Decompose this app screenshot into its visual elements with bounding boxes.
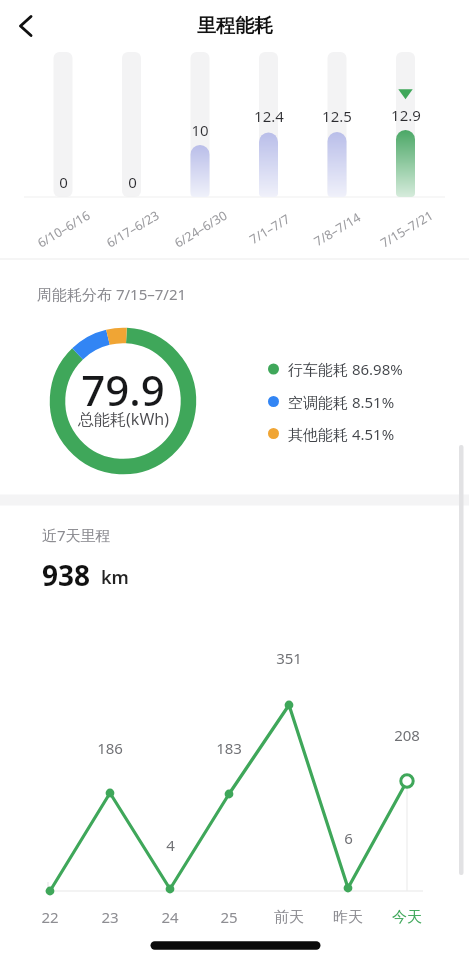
staticText: 186	[97, 738, 123, 758]
staticText: 7/8–7/14	[311, 209, 364, 250]
staticText: 351	[276, 648, 302, 668]
staticText: 今天	[392, 908, 422, 927]
staticText: 0	[128, 172, 137, 192]
staticText: 12.4	[254, 106, 284, 126]
staticText: 空调能耗 8.51%	[288, 392, 395, 412]
button[interactable]	[8, 9, 44, 43]
staticText: 昨天	[333, 908, 363, 927]
staticText: 12.5	[322, 106, 352, 126]
staticText: 0	[59, 172, 68, 192]
button[interactable]: 行车能耗 86.98%	[288, 355, 403, 383]
staticText: 7/15–7/21	[377, 207, 436, 252]
staticText: 6/24–6/30	[171, 207, 230, 252]
staticText: 前天	[274, 908, 304, 927]
staticText: 周能耗分布 7/15–7/21	[37, 284, 187, 304]
staticText: 25	[220, 907, 238, 927]
button[interactable]: 空调能耗 8.51%	[288, 388, 395, 416]
staticText: 总能耗(kWh)	[78, 408, 169, 430]
staticText: 其他能耗 4.51%	[288, 424, 395, 444]
staticText: 6/10–6/16	[34, 207, 93, 252]
staticText: 6/17–6/23	[103, 207, 162, 252]
staticText: 行车能耗 86.98%	[288, 359, 403, 379]
staticText: 938	[42, 556, 91, 592]
staticText: 12.9	[391, 105, 421, 125]
staticText: 23	[101, 907, 119, 927]
staticText: 4	[166, 835, 175, 855]
staticText: 183	[216, 738, 242, 758]
staticText: 22	[41, 907, 59, 927]
staticText: 里程能耗	[197, 14, 273, 38]
staticText: 208	[394, 725, 420, 745]
staticText: 近7天里程	[42, 525, 111, 545]
staticText: 10	[191, 120, 209, 140]
staticText: 24	[161, 907, 179, 927]
staticText: 6	[344, 828, 353, 848]
button[interactable]: 其他能耗 4.51%	[288, 420, 395, 448]
staticText: km	[101, 565, 129, 590]
staticText: 7/1–7/7	[246, 210, 293, 248]
staticText: 79.9	[81, 361, 165, 417]
